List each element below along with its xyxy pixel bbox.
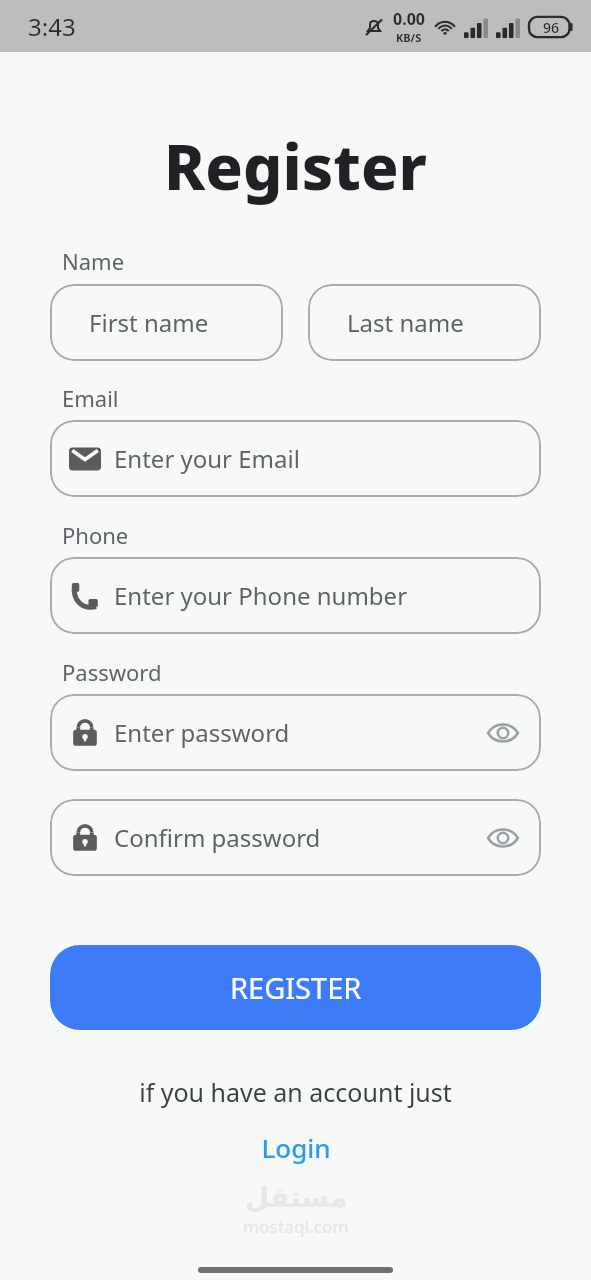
staticText: 0.00 xyxy=(393,8,425,30)
staticText: 96 xyxy=(543,18,560,37)
staticText: Enter your Email xyxy=(114,442,523,475)
staticText: Confirm password xyxy=(114,821,483,854)
button[interactable]: Confirm password xyxy=(50,799,541,876)
staticText: if you have an account just xyxy=(139,1075,452,1109)
button[interactable]: Enter your Email xyxy=(50,420,541,497)
staticText: 3:43 xyxy=(28,10,76,43)
button[interactable]: REGISTER xyxy=(50,945,541,1030)
button[interactable]: Enter password xyxy=(50,694,541,771)
staticText: First name xyxy=(89,306,265,339)
button[interactable]: Login xyxy=(253,1128,339,1167)
staticText: Enter your Phone number xyxy=(114,579,523,612)
staticText: Password xyxy=(62,657,162,687)
staticText: REGISTER xyxy=(230,968,362,1007)
staticText: KB/S xyxy=(396,30,422,45)
staticText: Register xyxy=(164,124,427,208)
button[interactable]: First name xyxy=(50,284,283,361)
staticText: Last name xyxy=(347,306,523,339)
button[interactable]: Toggle password visibility xyxy=(483,818,523,858)
button[interactable]: Enter your Phone number xyxy=(50,557,541,634)
staticText: mostaql.com xyxy=(243,1215,349,1238)
staticText: Name xyxy=(62,246,125,276)
staticText: Login xyxy=(261,1130,331,1165)
button[interactable]: Toggle password visibility xyxy=(483,713,523,753)
button[interactable]: Last name xyxy=(308,284,541,361)
staticText: مستقل xyxy=(245,1181,348,1214)
staticText: Email xyxy=(62,383,119,413)
staticText: Enter password xyxy=(114,716,483,749)
staticText: Phone xyxy=(62,520,129,550)
